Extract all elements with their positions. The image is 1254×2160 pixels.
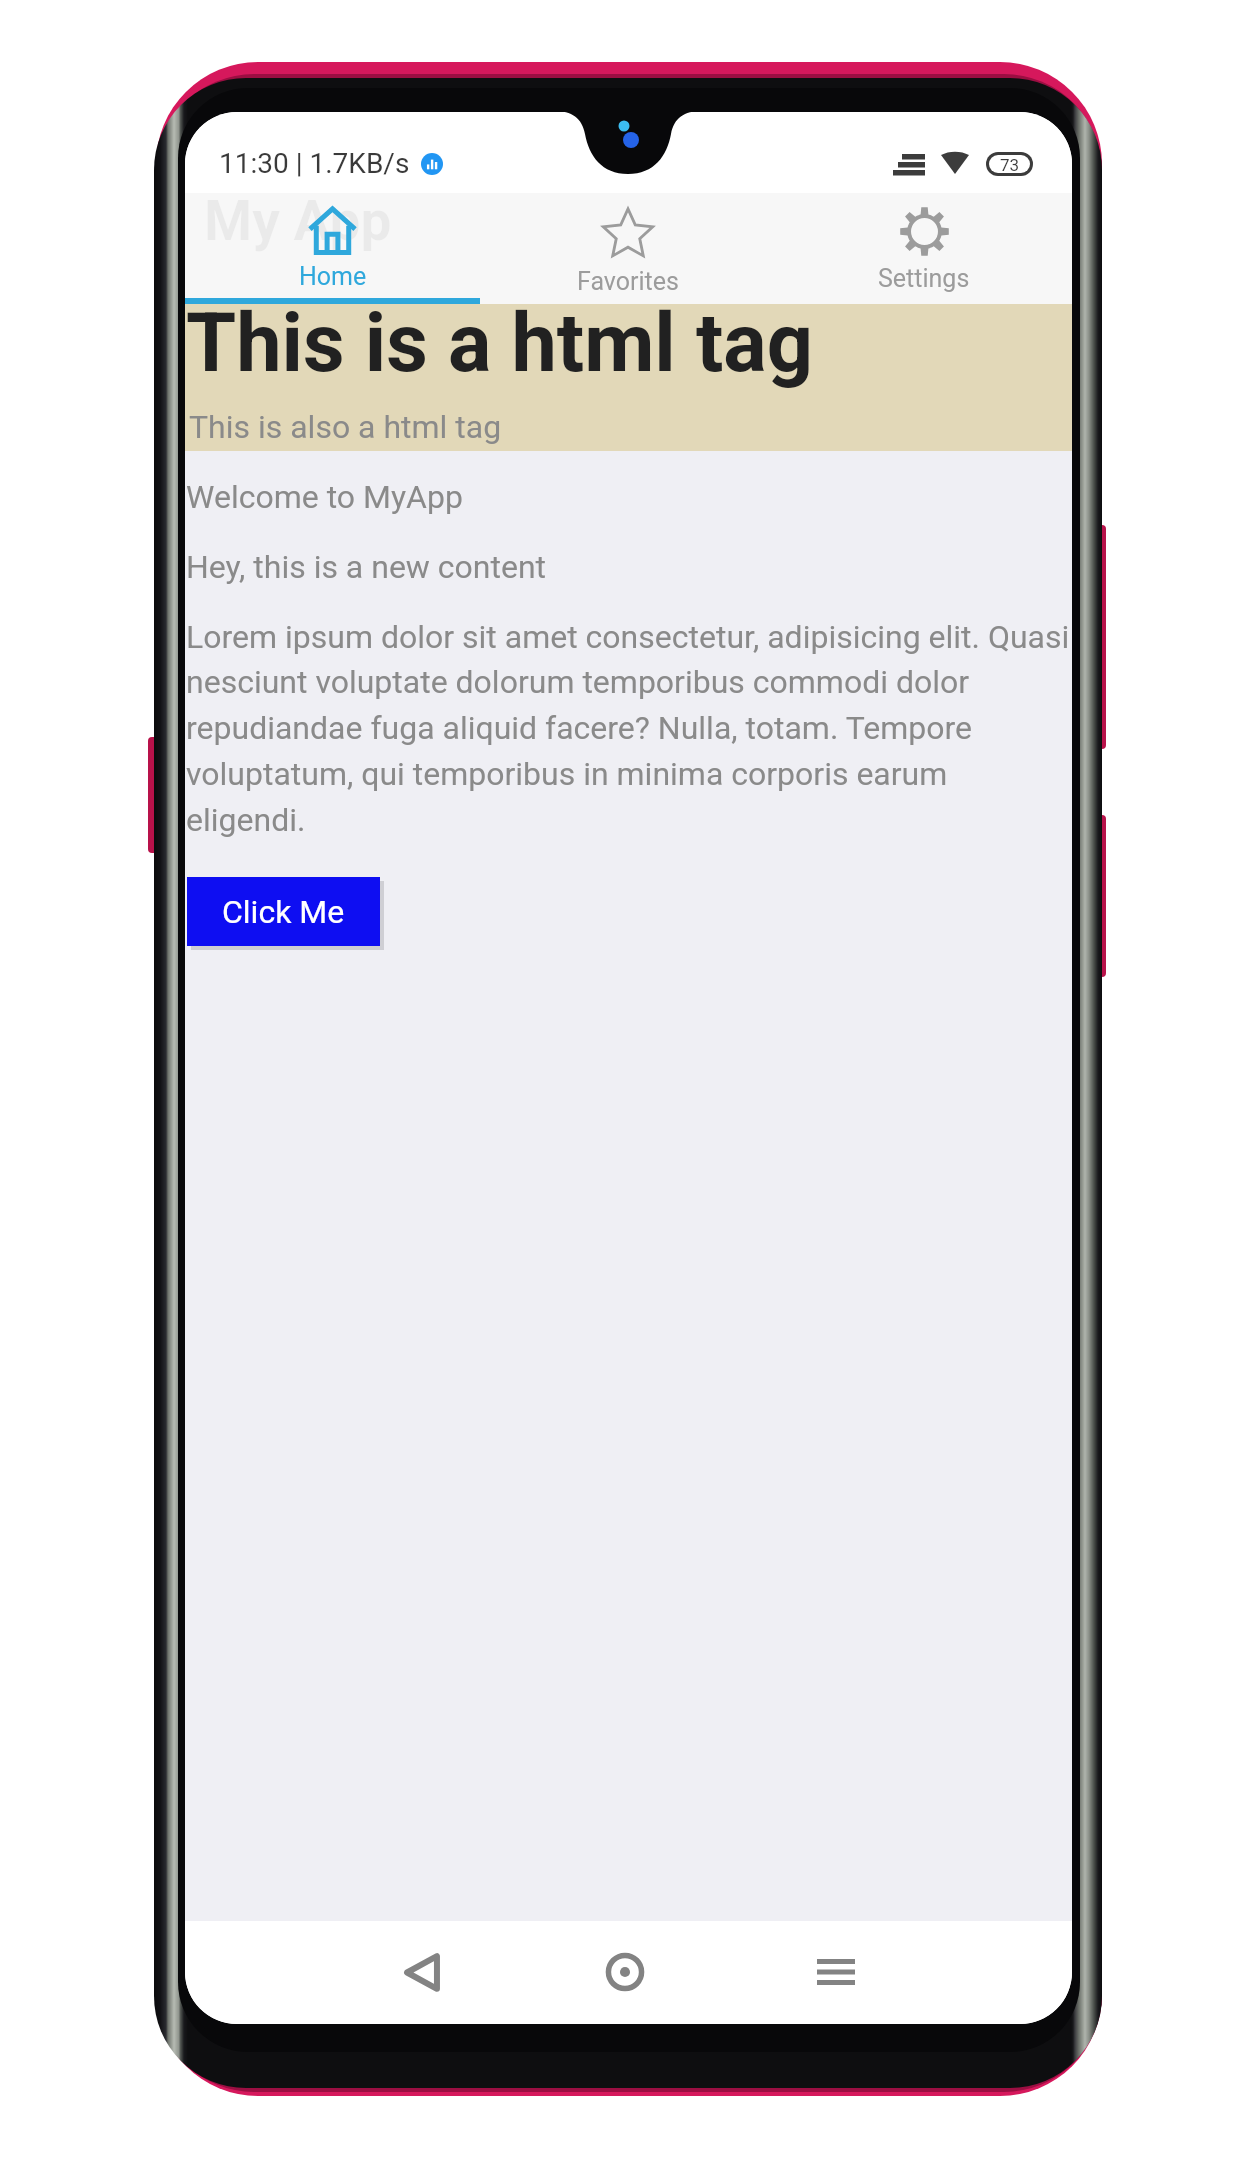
- staticText: 73: [1000, 155, 1020, 173]
- staticText: My App: [204, 189, 392, 253]
- button[interactable]: Click Me: [187, 877, 380, 946]
- button[interactable]: Favorites: [480, 193, 776, 304]
- staticText: This is also a html tag: [189, 408, 502, 446]
- staticText: Home: [299, 262, 367, 291]
- button[interactable]: Back: [362, 1924, 482, 2020]
- button[interactable]: Home: [185, 193, 480, 304]
- staticText: 11:30 | 1.7KB/s: [219, 147, 410, 180]
- staticText: This is a html tag: [186, 296, 813, 391]
- staticText: Click Me: [222, 893, 345, 931]
- staticText: Settings: [878, 264, 970, 293]
- staticText: Favorites: [577, 267, 679, 296]
- staticText: Hey, this is a new content: [186, 548, 547, 586]
- button[interactable]: Home: [565, 1924, 685, 2020]
- staticText: Welcome to MyApp: [186, 478, 463, 516]
- button[interactable]: Recents: [776, 1924, 896, 2020]
- staticText: Lorem ipsum dolor sit amet consectetur, …: [186, 618, 1072, 839]
- button[interactable]: Settings: [776, 193, 1072, 304]
